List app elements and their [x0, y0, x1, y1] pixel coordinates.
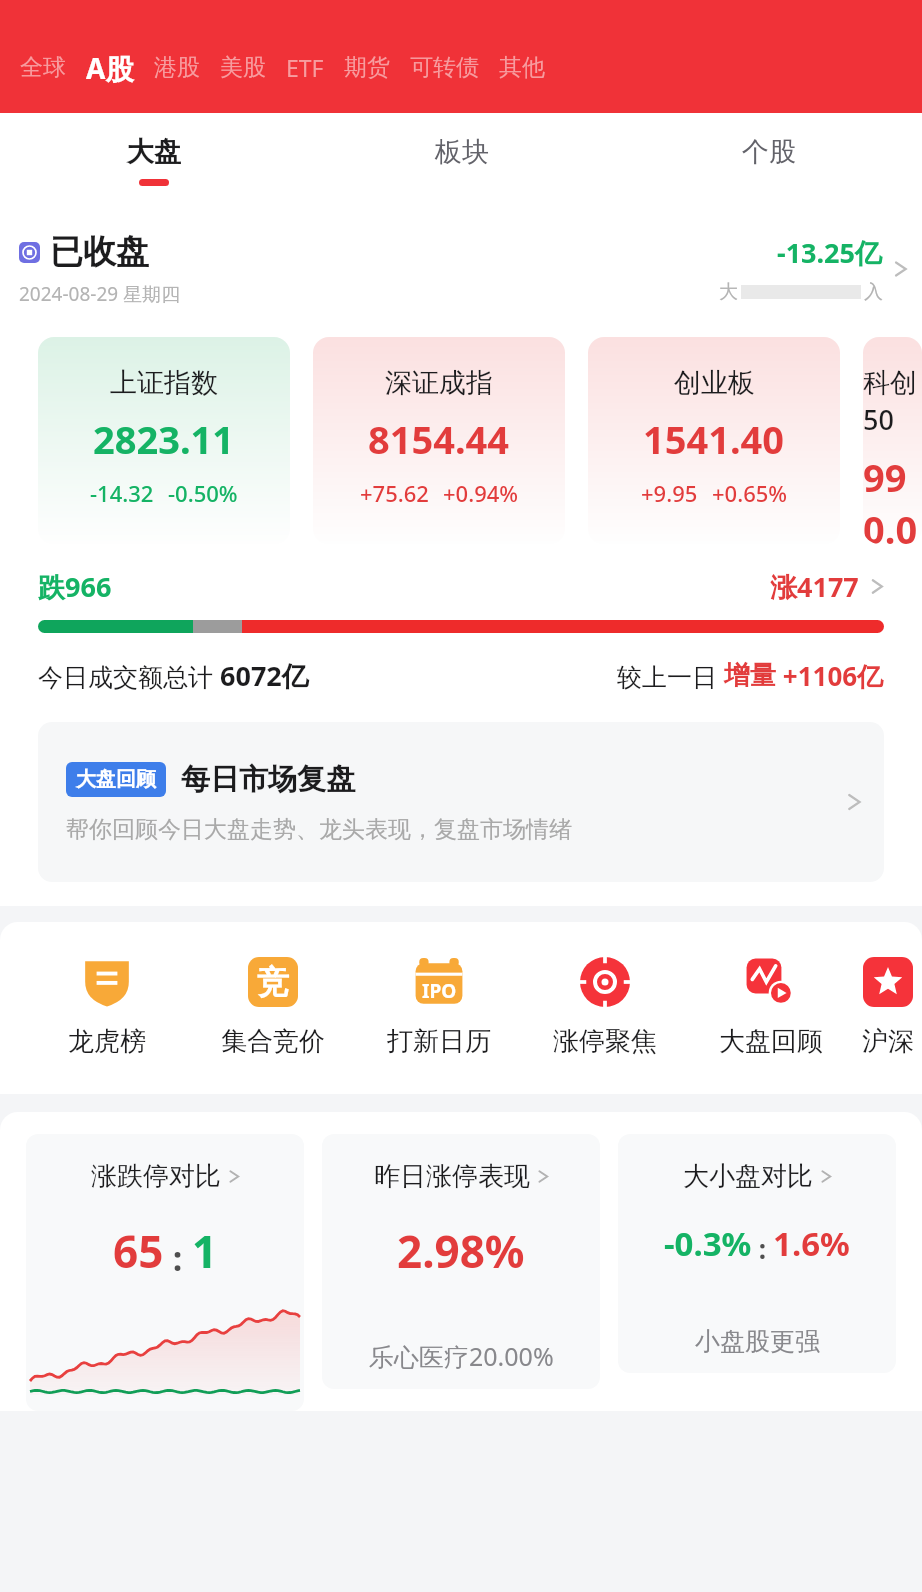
button[interactable]: 大小盘对比: [618, 1134, 896, 1373]
staticText: 大: [719, 280, 738, 304]
staticText: 帮你回顾今日大盘走势、龙头表现，复盘市场情绪: [66, 815, 572, 844]
button[interactable]: 集合竞价: [190, 954, 356, 1058]
staticText: 1.6%: [773, 1221, 850, 1266]
staticText: 港股: [154, 53, 200, 82]
button[interactable]: 全球: [10, 45, 76, 90]
staticText: 期货: [344, 53, 390, 82]
staticText: 昨日涨停表现: [374, 1160, 530, 1193]
button[interactable]: 已收盘: [0, 231, 922, 307]
button[interactable]: 跌966: [0, 568, 922, 694]
staticText: 涨4177: [770, 568, 859, 605]
staticText: 创业板: [674, 366, 755, 400]
staticText: A股: [86, 49, 134, 87]
staticText: 2823.11: [93, 413, 235, 465]
staticText: 集合竞价: [221, 1025, 325, 1058]
staticText: 8154.44: [368, 413, 510, 465]
staticText: 乐心医疗20.00%: [369, 1339, 554, 1373]
staticText: 2.98%: [397, 1221, 525, 1281]
staticText: 入: [864, 280, 883, 304]
button[interactable]: 大盘: [0, 113, 308, 211]
staticText: 竞: [257, 962, 289, 1002]
button[interactable]: 涨停聚焦: [522, 954, 688, 1058]
staticText: :: [164, 1235, 192, 1281]
button[interactable]: 涨跌停对比: [26, 1134, 304, 1411]
staticText: 上证指数: [110, 366, 218, 400]
button[interactable]: A股: [76, 41, 144, 95]
staticText: 今日成交额总计: [38, 659, 220, 693]
staticText: 科创50: [863, 366, 922, 438]
staticText: 美股: [220, 53, 266, 82]
staticText: 大盘回顾: [719, 1025, 823, 1058]
staticText: 小盘股更强: [695, 1326, 820, 1357]
staticText: 其他: [499, 53, 545, 82]
staticText: -0.3%: [664, 1221, 752, 1266]
staticText: 板块: [435, 135, 489, 169]
button[interactable]: 龙虎榜: [24, 954, 190, 1058]
staticText: +1106亿: [776, 658, 884, 694]
button[interactable]: 其他: [489, 45, 555, 90]
staticText: 1: [192, 1221, 218, 1281]
staticText: IPO: [422, 978, 457, 1004]
staticText: 打新日历: [387, 1025, 491, 1058]
staticText: +9.95: [641, 478, 698, 508]
staticText: -13.25亿: [777, 234, 883, 271]
staticText: 990.00: [863, 451, 922, 544]
staticText: 每日市场复盘: [181, 761, 355, 798]
button[interactable]: 美股: [210, 45, 276, 90]
staticText: 6072亿: [220, 657, 309, 694]
button[interactable]: 港股: [144, 45, 210, 90]
staticText: 已收盘: [50, 231, 149, 273]
staticText: +75.62: [360, 478, 429, 508]
staticText: 深证成指: [385, 366, 493, 400]
staticText: 可转债: [410, 53, 479, 82]
button[interactable]: 打新日历: [356, 954, 522, 1058]
staticText: 大盘: [127, 135, 181, 169]
staticText: 65: [113, 1221, 164, 1281]
button[interactable]: 板块: [308, 113, 615, 211]
staticText: 1541.40: [643, 413, 785, 465]
staticText: 全球: [20, 53, 66, 82]
button[interactable]: 上证指数: [38, 337, 290, 544]
staticText: -14.32: [90, 478, 154, 508]
staticText: 增量: [724, 659, 776, 692]
button[interactable]: 大盘回顾: [38, 722, 884, 882]
staticText: 跌966: [38, 568, 112, 605]
button[interactable]: 科创50: [863, 337, 922, 544]
button[interactable]: 个股: [615, 113, 922, 211]
button[interactable]: 深证成指: [313, 337, 565, 544]
staticText: 涨跌停对比: [91, 1160, 221, 1193]
staticText: 沪深: [862, 1025, 914, 1058]
staticText: -0.50%: [168, 478, 238, 508]
staticText: ETF: [286, 52, 324, 83]
staticText: :: [752, 1231, 773, 1266]
button[interactable]: 期货: [334, 45, 400, 90]
button[interactable]: 沪深: [854, 954, 922, 1058]
staticText: 个股: [742, 135, 796, 169]
button[interactable]: ETF: [276, 44, 334, 91]
staticText: 大小盘对比: [683, 1160, 813, 1193]
button[interactable]: 可转债: [400, 45, 489, 90]
staticText: +0.65%: [712, 478, 788, 508]
staticText: 2024-08-29 星期四: [19, 281, 181, 307]
staticText: +0.94%: [443, 478, 519, 508]
button[interactable]: 昨日涨停表现: [322, 1134, 600, 1389]
staticText: 较上一日: [617, 659, 724, 693]
button[interactable]: 大盘回顾: [688, 954, 854, 1058]
staticText: 涨停聚焦: [553, 1025, 657, 1058]
staticText: 龙虎榜: [68, 1025, 146, 1058]
button[interactable]: 创业板: [588, 337, 840, 544]
staticText: 大盘回顾: [76, 767, 156, 792]
